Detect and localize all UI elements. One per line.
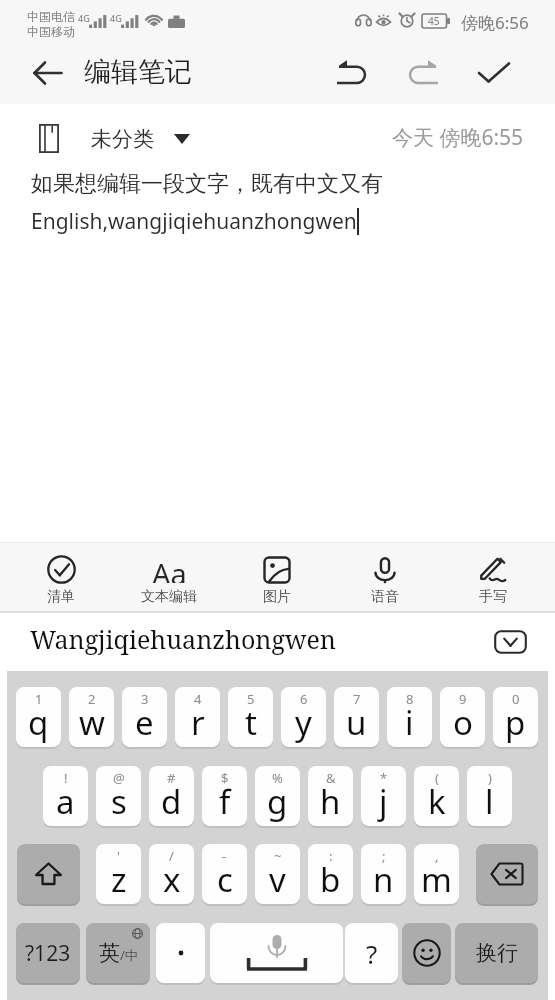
staticText: j (379, 779, 388, 824)
staticText: b (320, 857, 341, 902)
button[interactable]: 3 (122, 687, 167, 747)
button[interactable]: # (149, 766, 194, 826)
button[interactable]: Backspace (476, 844, 538, 904)
staticText: ' (117, 847, 120, 865)
staticText: o (453, 700, 473, 745)
button[interactable]: 8 (387, 687, 432, 747)
button[interactable]: 6 (281, 687, 326, 747)
staticText: l (485, 779, 494, 824)
staticText: 3 (141, 690, 149, 708)
staticText: ) (488, 769, 492, 787)
staticText: a (56, 779, 75, 824)
button[interactable]: 9 (440, 687, 485, 747)
staticText: 45 (428, 14, 440, 28)
staticText: 5 (247, 690, 255, 708)
button[interactable] (156, 923, 205, 983)
button[interactable]: 图片 (223, 543, 331, 611)
staticText: 傍晚6:56 (461, 11, 529, 34)
button[interactable]: 语音 (331, 543, 439, 611)
button[interactable]: ) (467, 766, 512, 826)
staticText: /中 (120, 946, 138, 964)
button[interactable]: 0 (493, 687, 538, 747)
staticText: 4G (110, 12, 122, 24)
staticText: ?123 (25, 939, 71, 968)
staticText: k (428, 779, 446, 824)
button[interactable]: ~ (255, 844, 300, 904)
staticText: x (163, 857, 181, 902)
button[interactable]: & (308, 766, 353, 826)
button[interactable]: ? (345, 923, 398, 983)
button[interactable]: Redo (399, 53, 449, 93)
staticText: @ (113, 769, 125, 787)
staticText: 4 (194, 690, 202, 708)
staticText: 换行 (476, 940, 518, 966)
staticText: Wangjiqiehuanzhongwen (30, 622, 336, 656)
staticText: 文本编辑 (141, 588, 197, 606)
button[interactable]: $ (202, 766, 247, 826)
button[interactable]: ?123 (16, 923, 80, 983)
button[interactable]: - (202, 844, 247, 904)
button[interactable]: 1 (16, 687, 61, 747)
button[interactable]: ( (414, 766, 459, 826)
staticText: ( (435, 769, 439, 787)
button[interactable]: Space (210, 923, 343, 983)
button[interactable]: 7 (334, 687, 379, 747)
button[interactable]: 手写 (439, 543, 547, 611)
staticText: g (267, 779, 288, 824)
button[interactable]: , (414, 844, 459, 904)
button[interactable]: ; (361, 844, 406, 904)
button[interactable]: @ (96, 766, 141, 826)
button[interactable]: Aa (115, 543, 223, 611)
staticText: 9 (459, 690, 467, 708)
button[interactable]: 4 (175, 687, 220, 747)
staticText: / (169, 847, 174, 865)
button[interactable]: % (255, 766, 300, 826)
staticText: p (505, 700, 526, 745)
staticText: Aa (152, 554, 187, 583)
staticText: i (405, 700, 414, 745)
staticText: y (295, 700, 312, 745)
button[interactable]: 英 (86, 923, 150, 983)
staticText: e (135, 700, 154, 745)
staticText: 1 (35, 690, 43, 708)
button[interactable]: 清单 (7, 543, 115, 611)
staticText: t (245, 700, 257, 745)
staticText: 英 (99, 940, 120, 966)
button[interactable]: * (361, 766, 406, 826)
button[interactable]: Back (28, 54, 68, 92)
button[interactable]: 换行 (455, 923, 538, 983)
staticText: % (272, 769, 283, 787)
button[interactable]: : (308, 844, 353, 904)
staticText: 中国电信 (27, 9, 75, 24)
staticText: h (320, 779, 341, 824)
staticText: r (191, 700, 205, 745)
staticText: 如果想编辑一段文字，既有中文又有 (31, 170, 383, 198)
staticText: 编辑笔记 (84, 55, 192, 89)
staticText: 6 (300, 690, 308, 708)
staticText: - (222, 847, 227, 865)
button[interactable]: Emoji (402, 923, 451, 983)
staticText: , (435, 847, 439, 865)
button[interactable]: Undo (326, 53, 376, 93)
staticText: s (111, 779, 127, 824)
button[interactable]: 5 (228, 687, 273, 747)
button[interactable]: Shift (17, 844, 80, 904)
staticText: q (28, 700, 49, 745)
staticText: n (373, 857, 394, 902)
button[interactable]: ' (96, 844, 141, 904)
staticText: $ (221, 769, 229, 787)
staticText: English,wangjiqiehuanzhongwen (31, 207, 357, 236)
staticText: d (161, 779, 182, 824)
staticText: ; (382, 847, 386, 865)
button[interactable]: Done (466, 52, 522, 94)
staticText: # (167, 769, 176, 787)
staticText: w (79, 700, 105, 745)
button[interactable]: / (149, 844, 194, 904)
button[interactable]: 2 (69, 687, 114, 747)
staticText: 4G (78, 12, 90, 24)
staticText: u (346, 700, 367, 745)
button[interactable]: ! (43, 766, 88, 826)
button[interactable]: Hide keyboard (490, 622, 530, 662)
staticText: f (219, 779, 231, 824)
staticText: : (329, 847, 333, 865)
